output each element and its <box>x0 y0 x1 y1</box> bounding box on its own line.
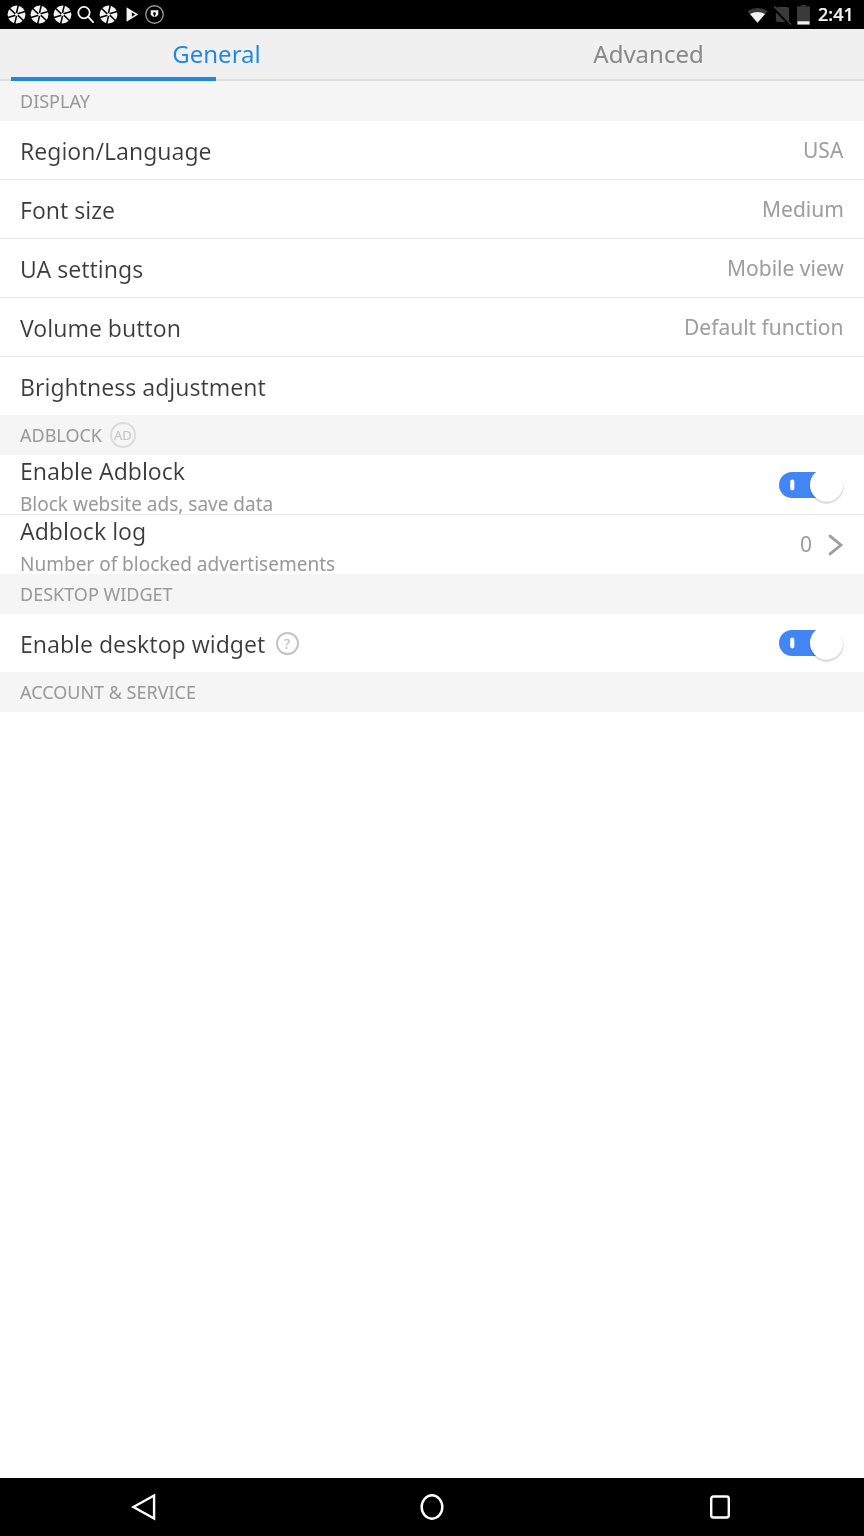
button[interactable]: Advanced <box>432 29 864 81</box>
button[interactable]: Toggle <box>779 467 844 503</box>
button[interactable]: Volume button <box>0 298 864 356</box>
staticText: Enable desktop widget <box>20 628 266 659</box>
staticText: USA <box>803 136 844 165</box>
staticText: DISPLAY <box>20 89 91 114</box>
button[interactable]: Enable desktop widget <box>0 614 864 672</box>
button[interactable]: Enable Adblock <box>0 455 864 514</box>
button[interactable]: General <box>0 29 432 81</box>
staticText: ACCOUNT & SERVICE <box>20 680 196 705</box>
staticText: DESKTOP WIDGET <box>20 582 173 607</box>
staticText: Block website ads, save data <box>20 491 274 514</box>
button[interactable]: Back <box>0 1478 288 1536</box>
button[interactable]: Font size <box>0 180 864 238</box>
button[interactable]: Recent apps <box>576 1478 864 1536</box>
staticText: ADBLOCK <box>20 423 102 448</box>
staticText: Brightness adjustment <box>20 371 844 402</box>
button[interactable]: Region/Language <box>0 121 864 179</box>
staticText: 0 <box>800 530 813 559</box>
staticText: Font size <box>20 194 762 225</box>
staticText: Enable Adblock <box>20 455 186 486</box>
staticText: AD <box>114 426 132 444</box>
button[interactable]: UA settings <box>0 239 864 297</box>
staticText: General <box>172 37 261 70</box>
button[interactable]: Toggle <box>779 625 844 661</box>
staticText: Region/Language <box>20 135 803 166</box>
staticText: Advanced <box>593 37 704 70</box>
staticText: 2:41 <box>818 2 854 27</box>
staticText: Mobile view <box>727 254 844 283</box>
staticText: ? <box>284 634 291 653</box>
staticText: Default function <box>684 313 844 342</box>
button[interactable]: Brightness adjustment <box>0 357 864 415</box>
button[interactable]: Adblock log <box>0 515 864 574</box>
button[interactable]: Home <box>288 1478 576 1536</box>
staticText: Number of blocked advertisements <box>20 551 336 574</box>
staticText: Medium <box>762 195 844 224</box>
staticText: Adblock log <box>20 515 147 546</box>
staticText: UA settings <box>20 253 727 284</box>
staticText: Volume button <box>20 312 684 343</box>
